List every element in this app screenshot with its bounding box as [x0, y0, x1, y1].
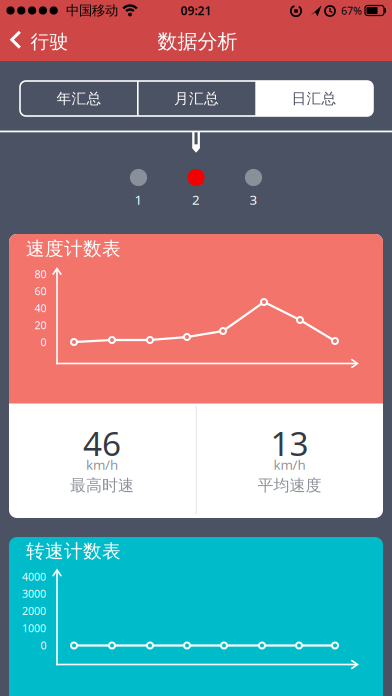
button[interactable]: 日汇总 — [255, 81, 372, 116]
staticText: 67% — [341, 3, 362, 18]
staticText: 1 — [134, 191, 142, 208]
button[interactable]: 第1页 — [113, 168, 163, 210]
staticText: km/h — [86, 456, 118, 473]
staticText: 60 — [34, 284, 46, 298]
staticText: 0 — [40, 638, 46, 652]
staticText: 80 — [34, 267, 46, 281]
staticText: 40 — [34, 301, 46, 315]
staticText: 平均速度 — [257, 476, 321, 495]
staticText: 4000 — [22, 569, 46, 584]
button[interactable]: 第2页 — [171, 168, 221, 210]
staticText: 转速计数表 — [26, 540, 121, 563]
staticText: 日汇总 — [291, 89, 336, 107]
staticText: 3000 — [22, 587, 46, 601]
staticText: 2 — [192, 191, 200, 208]
staticText: 月汇总 — [174, 89, 219, 107]
staticText: 13 — [270, 421, 308, 465]
staticText: 中国移动 — [66, 2, 118, 19]
button[interactable]: 年汇总 — [20, 81, 137, 116]
staticText: 年汇总 — [56, 89, 101, 107]
staticText: 46 — [83, 421, 121, 465]
staticText: 0 — [40, 335, 46, 349]
staticText: 1000 — [22, 621, 46, 635]
staticText: 最高时速 — [70, 476, 134, 495]
staticText: 2000 — [22, 604, 46, 618]
button[interactable]: 返回行驶 — [0, 20, 70, 61]
staticText: 行驶 — [30, 30, 68, 53]
button[interactable]: 月汇总 — [138, 81, 255, 116]
staticText: 速度计数表 — [26, 237, 121, 260]
button[interactable]: 第3页 — [228, 168, 278, 210]
staticText: 数据分析 — [157, 29, 237, 54]
staticText: km/h — [273, 456, 305, 473]
staticText: 20 — [34, 318, 46, 332]
staticText: 09:21 — [180, 2, 211, 18]
staticText: 3 — [249, 191, 257, 208]
